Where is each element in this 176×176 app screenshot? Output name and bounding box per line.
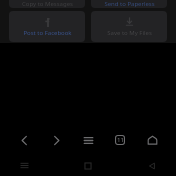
- button[interactable]: Copy to Messages: [9, 0, 85, 8]
- button[interactable]: Send to Paperless: [91, 0, 167, 8]
- staticText: Copy to Messages: [22, 0, 73, 8]
- button[interactable]: Home: [76, 155, 100, 176]
- button[interactable]: Tabs, 11 open: [106, 126, 134, 154]
- staticText: 11: [117, 136, 124, 144]
- button[interactable]: Recent apps: [12, 155, 36, 176]
- button[interactable]: Back: [10, 126, 38, 154]
- button[interactable]: Save to My Files: [91, 11, 167, 42]
- staticText: Save to My Files: [107, 29, 152, 37]
- staticText: Post to Facebook: [23, 29, 72, 37]
- button[interactable]: Home: [138, 126, 166, 154]
- button[interactable]: Back: [140, 155, 164, 176]
- button[interactable]: Bookmarks: [74, 126, 102, 154]
- button[interactable]: Post to Facebook: [9, 11, 85, 42]
- button[interactable]: Forward: [42, 126, 70, 154]
- staticText: Send to Paperless: [104, 0, 155, 8]
